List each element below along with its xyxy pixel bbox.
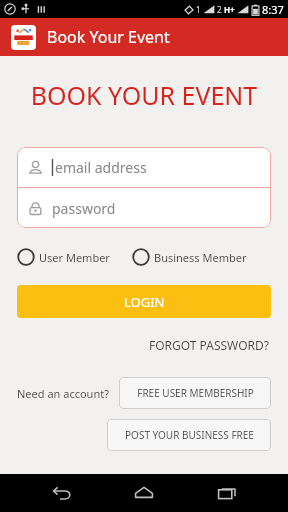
staticText: password	[52, 199, 116, 218]
staticText: Business Member	[154, 250, 247, 265]
staticText: LOGIN	[124, 293, 165, 311]
button[interactable]: FORGOT PASSWORD?	[147, 335, 271, 355]
button[interactable]: Recent apps	[206, 474, 248, 512]
staticText: H+	[224, 4, 235, 15]
staticText: FORGOT PASSWORD?	[149, 337, 269, 353]
staticText: User Member	[39, 250, 110, 265]
button[interactable]: App logo	[11, 25, 36, 50]
staticText: FREE USER MEMBERSHIP	[137, 386, 254, 400]
staticText: Book Your Event	[47, 26, 170, 48]
staticText: 1	[196, 4, 201, 15]
button[interactable]: Home	[123, 474, 165, 512]
staticText: BOOK YOUR EVENT	[17, 78, 271, 112]
button[interactable]: email address	[17, 147, 271, 187]
button[interactable]: LOGIN	[17, 285, 271, 318]
button[interactable]: Business Member	[132, 246, 247, 268]
staticText: 8:37	[262, 2, 284, 17]
button[interactable]: password	[17, 188, 271, 228]
staticText: 2	[217, 4, 222, 15]
staticText: Need an account?	[17, 386, 109, 401]
button[interactable]: User Member	[17, 246, 110, 268]
staticText: email address	[55, 158, 147, 177]
staticText: POST YOUR BUSINESS FREE	[125, 428, 254, 442]
button[interactable]: FREE USER MEMBERSHIP	[119, 377, 271, 409]
button[interactable]: POST YOUR BUSINESS FREE	[107, 419, 271, 451]
button[interactable]: Back	[41, 474, 83, 512]
